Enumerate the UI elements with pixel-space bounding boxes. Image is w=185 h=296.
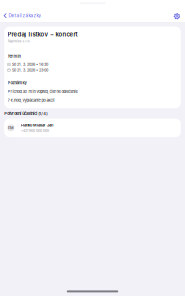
staticText: Predaj lístkov – koncert: [8, 31, 78, 38]
staticText: So 21. 3. 2026 • 16:30: [12, 62, 48, 67]
staticText: So 21. 3. 2026 • 23:00: [12, 68, 48, 72]
button[interactable]: FM: [4, 119, 181, 137]
staticText: FM: [8, 125, 14, 130]
staticText: +421 900 000 000: [21, 129, 49, 133]
staticText: Poznámky: [8, 80, 27, 85]
staticText: Franko Mlatiar Ján: [21, 123, 53, 127]
staticText: Agentúra s.r.o.: [8, 39, 31, 43]
staticText: 7 €/hod, vyplácanie po akcii: [8, 98, 55, 103]
staticText: Detail zákazky: [8, 13, 41, 18]
staticText: Potvrdení účastníci (1/4): [4, 111, 47, 116]
staticText: Príchod 30 min vopred, čierne oblečenie: [8, 89, 78, 94]
button[interactable]: Settings: [169, 12, 185, 19]
staticText: Termín: [8, 54, 21, 59]
button[interactable]: Detail zákazky: [0, 12, 47, 20]
